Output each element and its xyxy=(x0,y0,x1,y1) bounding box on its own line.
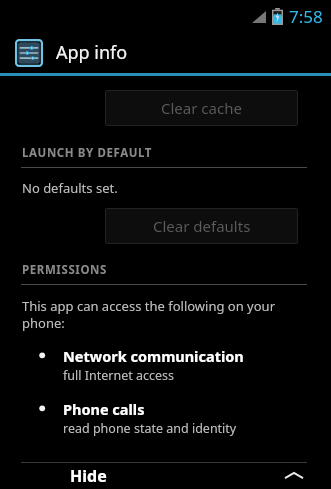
staticText: Phone calls xyxy=(63,399,145,419)
button[interactable]: Clear defaults xyxy=(105,208,298,244)
staticText: 7:58 xyxy=(289,5,323,28)
staticText: Hide xyxy=(70,465,107,487)
staticText: Clear defaults xyxy=(153,216,251,236)
staticText: Clear cache xyxy=(161,98,242,118)
staticText: PERMISSIONS xyxy=(22,262,107,278)
staticText: Network communication xyxy=(63,346,244,366)
button[interactable]: Hide xyxy=(0,463,331,489)
button[interactable]: Phone calls xyxy=(0,399,331,437)
button[interactable]: App icon xyxy=(0,32,331,73)
staticText: App info xyxy=(56,40,128,65)
button[interactable]: Network communication xyxy=(0,346,331,384)
staticText: No defaults set. xyxy=(22,179,118,197)
button[interactable]: Clear cache xyxy=(105,90,298,126)
other: Collapse xyxy=(285,470,303,482)
other: App icon xyxy=(14,38,44,68)
staticText: full Internet access xyxy=(63,367,174,384)
staticText: This app can access the following on you… xyxy=(22,297,276,332)
staticText: read phone state and identity xyxy=(63,420,237,437)
staticText: LAUNCH BY DEFAULT xyxy=(22,145,153,161)
